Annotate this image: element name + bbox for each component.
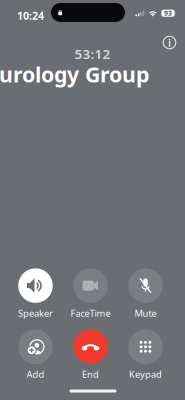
staticText: 10:24 — [17, 8, 44, 23]
button[interactable]: FaceTime — [63, 270, 118, 318]
staticText: End — [82, 368, 99, 380]
button[interactable]: Speaker — [8, 270, 63, 318]
staticText: 93 — [164, 9, 172, 18]
button[interactable]: Keypad — [118, 331, 173, 379]
button[interactable]: End — [63, 331, 118, 379]
staticText: i — [168, 35, 171, 50]
staticText: Keypad — [129, 368, 162, 380]
staticText: Add — [26, 368, 44, 380]
button[interactable]: Mute — [118, 270, 173, 318]
staticText: 53:12 — [74, 45, 110, 63]
button[interactable]: Add — [8, 331, 63, 379]
staticText: Speaker — [18, 307, 53, 319]
staticText: Neurology Group — [0, 60, 149, 88]
button[interactable]: Call Info — [158, 31, 180, 53]
staticText: Mute — [134, 307, 156, 319]
staticText: FaceTime — [70, 307, 110, 319]
